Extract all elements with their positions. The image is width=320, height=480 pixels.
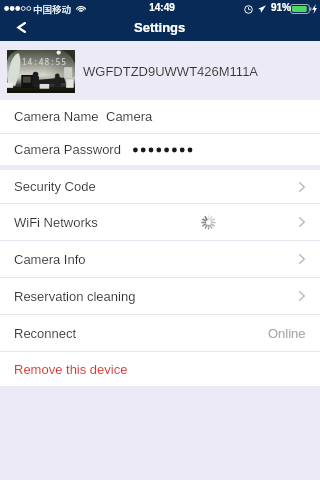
staticText: Camera [106,109,153,124]
staticText: 14:49 [2,2,320,13]
button[interactable]: Back [0,18,42,41]
staticText: 14:48:55 [22,56,67,67]
button[interactable]: Camera Info [0,241,320,277]
staticText: Camera Password [14,142,121,157]
staticText: 中国移动 [33,2,72,16]
staticText: Remove this device [14,362,128,377]
button[interactable]: Remove this device [0,352,320,386]
button[interactable]: Reconnect [0,315,320,351]
staticText: Settings [134,20,186,35]
button[interactable]: Reservation cleaning [0,278,320,314]
staticText: Camera Info [14,252,86,267]
staticText: WGFDTZD9UWWT426M111A [83,64,259,79]
button[interactable]: Camera Password [0,134,320,165]
staticText: Online [268,326,306,341]
staticText: WiFi Networks [14,215,98,230]
staticText: Security Code [14,179,96,194]
staticText: Reconnect [14,326,77,341]
button[interactable]: Camera Name [0,100,320,133]
button[interactable]: Security Code [0,170,320,203]
button[interactable]: 14:48:55 [7,50,75,93]
staticText: 91% [271,2,292,13]
staticText: Reservation cleaning [14,289,136,304]
staticText: Camera Name [14,109,99,124]
button[interactable]: WiFi Networks [0,204,320,240]
